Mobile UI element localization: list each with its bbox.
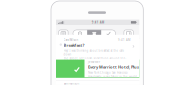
staticText: the street, let's grab something around … [63,57,126,64]
button[interactable]: Inbox list [59,30,68,37]
staticText: 9:41 AM [118,38,130,42]
staticText: Jetsetter [88,60,100,64]
staticText: Sam Harrison [63,82,79,85]
button[interactable]: Compose [124,30,133,37]
button[interactable]: Later [73,30,87,37]
staticText: New York Chicago San Francisco [88,71,128,74]
staticText: Handmade jeans fabric in the world [88,75,137,78]
staticText: Every Marriott Hotel, Plus [88,64,139,70]
staticText: 9:41 AM [92,21,104,24]
staticText: Hey! I was thinking about breakfast at t… [63,49,124,56]
button[interactable]: Done [101,30,116,37]
staticText: Cara Wilson [63,38,78,42]
button[interactable]: Archive [87,30,101,37]
staticText: Breakfast? [63,42,84,48]
